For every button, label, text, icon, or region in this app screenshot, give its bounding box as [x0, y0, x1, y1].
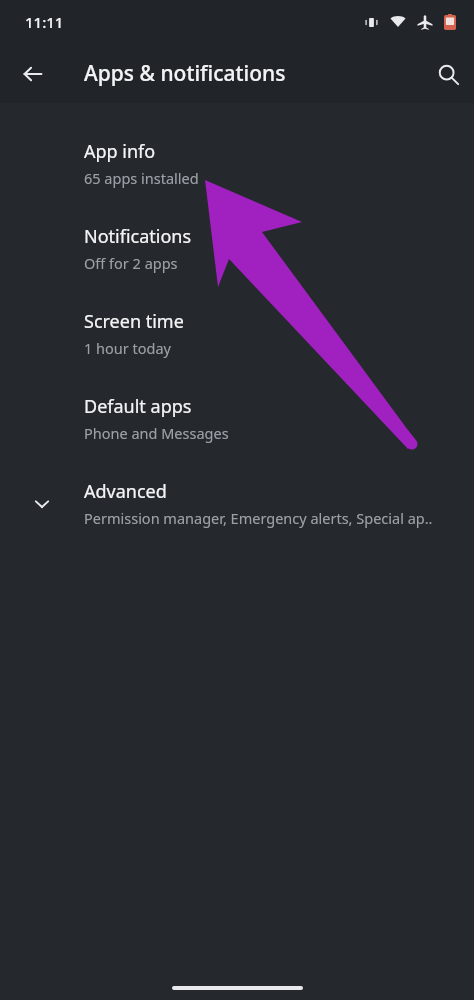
button[interactable]: App info	[0, 103, 474, 206]
button[interactable]: Search	[426, 52, 470, 96]
staticText: Permission manager, Emergency alerts, Sp…	[84, 508, 433, 528]
button[interactable]: Default apps	[0, 376, 474, 461]
staticText: Phone and Messages	[84, 423, 229, 443]
staticText: Default apps	[84, 394, 192, 419]
button[interactable]: Advanced	[0, 461, 474, 546]
staticText: Screen time	[84, 309, 184, 334]
staticText: Off for 2 apps	[84, 253, 178, 273]
staticText: App info	[84, 139, 156, 164]
staticText: 65 apps installed	[84, 168, 199, 188]
button[interactable]: Screen time	[0, 291, 474, 376]
staticText: 11:11	[25, 12, 64, 32]
button[interactable]: Notifications	[0, 206, 474, 291]
staticText: 1 hour today	[84, 338, 171, 358]
staticText: Apps & notifications	[84, 59, 286, 88]
button[interactable]: Back	[11, 52, 55, 96]
staticText: Notifications	[84, 224, 192, 249]
staticText: Advanced	[84, 479, 167, 504]
